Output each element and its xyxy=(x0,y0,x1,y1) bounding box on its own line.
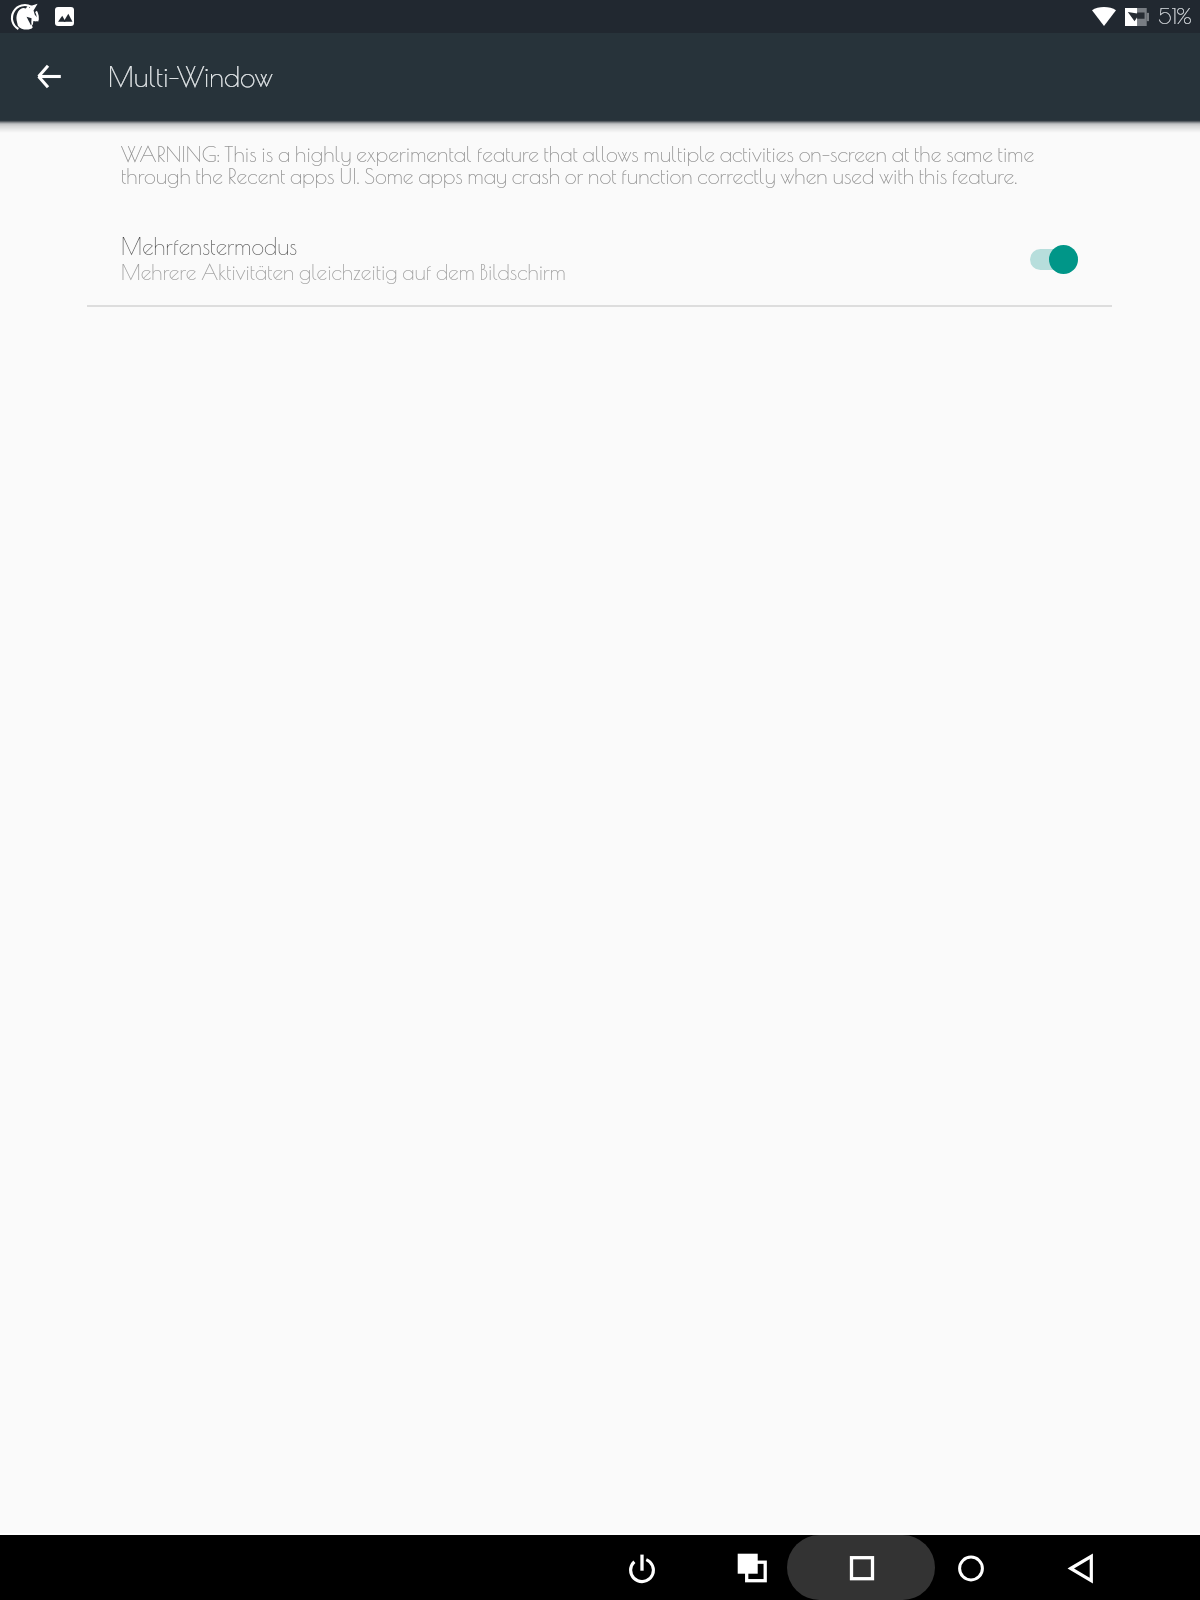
staticText: Mehrfenstermodus xyxy=(121,233,298,260)
staticText: Mehrere Aktivitäten gleichzeitig auf dem… xyxy=(121,260,566,285)
button[interactable]: Back xyxy=(23,51,75,103)
button[interactable]: Mehrfenstermodus xyxy=(0,233,1200,285)
staticText: 51% xyxy=(1158,4,1192,29)
staticText: Multi-Window xyxy=(108,60,273,93)
staticText: WARNING: This is a highly experimental f… xyxy=(121,141,1051,189)
button[interactable]: Split screen xyxy=(736,1552,768,1584)
button[interactable]: Recents xyxy=(846,1552,878,1584)
button[interactable]: Back xyxy=(1065,1552,1097,1584)
button[interactable]: Home xyxy=(955,1552,987,1584)
button[interactable]: Power xyxy=(626,1552,658,1584)
